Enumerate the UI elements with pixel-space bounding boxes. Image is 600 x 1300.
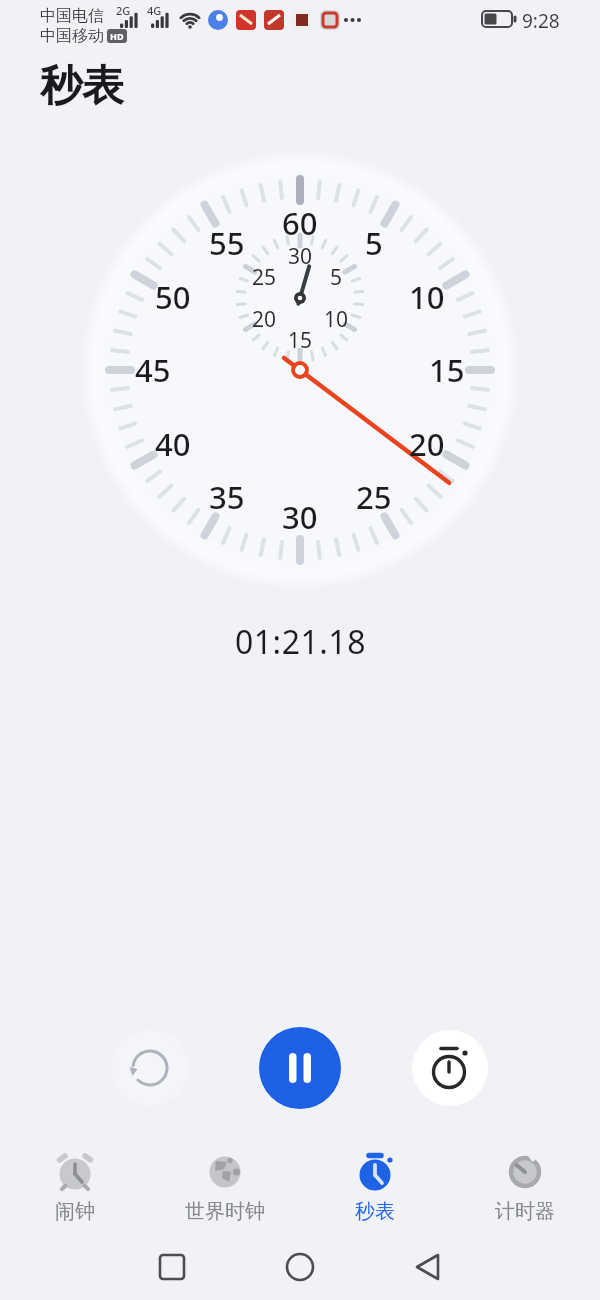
staticText: 30 — [288, 242, 313, 271]
staticText: 20 — [252, 305, 277, 334]
staticText: 计时器 — [495, 1199, 555, 1224]
staticText: 40 — [155, 423, 191, 465]
staticText: 55 — [209, 222, 245, 264]
button[interactable]: 闹钟 — [20, 1150, 130, 1232]
staticText: 9:28 — [522, 8, 560, 34]
staticText: 中国移动 — [40, 26, 104, 46]
staticText: 闹钟 — [55, 1199, 95, 1224]
staticText: 30 — [282, 496, 318, 538]
staticText: 45 — [135, 349, 171, 391]
button[interactable]: 计时器 — [470, 1150, 580, 1232]
button[interactable]: 世界时钟 — [170, 1150, 280, 1232]
staticText: 10 — [324, 305, 349, 334]
staticText: 秒表 — [40, 60, 124, 113]
staticText: 4G — [147, 3, 162, 18]
staticText: 20 — [409, 423, 445, 465]
staticText: 25 — [356, 476, 392, 518]
staticText: 世界时钟 — [185, 1199, 265, 1224]
staticText: HD — [110, 30, 124, 42]
staticText: 15 — [429, 349, 465, 391]
staticText: 5 — [330, 263, 343, 292]
staticText: 01:21.18 — [235, 620, 366, 664]
staticText: 50 — [155, 276, 191, 318]
staticText: 10 — [409, 276, 445, 318]
button[interactable]: 秒表 — [320, 1150, 430, 1232]
staticText: 秒表 — [355, 1199, 395, 1224]
staticText: 25 — [252, 263, 277, 292]
button[interactable] — [259, 1027, 341, 1109]
staticText: 中国电信 — [40, 6, 104, 26]
button[interactable] — [112, 1030, 188, 1106]
staticText: 15 — [288, 326, 313, 355]
button[interactable] — [412, 1030, 488, 1106]
staticText: 2G — [116, 3, 131, 18]
staticText: 60 — [282, 202, 318, 244]
staticText: 35 — [209, 476, 245, 518]
staticText: 5 — [365, 222, 383, 264]
